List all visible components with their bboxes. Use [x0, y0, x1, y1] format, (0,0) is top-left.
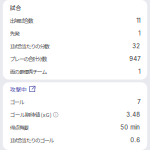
staticText: 50 min [120, 124, 140, 131]
button[interactable]: プレーの合計分数 [3, 52, 147, 65]
staticText: 先発 [10, 29, 19, 37]
button[interactable]: ゴール期待値 (xG) [3, 108, 147, 121]
staticText: 攻撃中 [10, 85, 27, 93]
staticText: 1試合当たりの分数 [10, 42, 49, 50]
staticText: 得点概要 [10, 123, 28, 131]
button[interactable]: 両の最優秀チーム [3, 65, 147, 78]
staticText: 947 [129, 55, 140, 62]
staticText: 両の最優秀チーム [10, 68, 47, 76]
button[interactable]: 攻撃中 [3, 83, 147, 96]
button[interactable]: 1試合当たりの分数 [3, 40, 147, 53]
staticText: ゴール [10, 98, 24, 106]
staticText: 出場試合数 [10, 17, 33, 25]
button[interactable]: 1試合当たりのゴール [3, 134, 147, 147]
staticText: 3.48 [126, 111, 140, 118]
staticText: 32 [132, 42, 140, 50]
button[interactable]: 得点概要 [3, 121, 147, 134]
button[interactable]: 出場試合数 [3, 14, 147, 27]
staticText: プレーの合計分数 [10, 55, 47, 63]
staticText: 0.6 [130, 136, 140, 144]
staticText: 1 [138, 68, 140, 75]
staticText: ゴール期待値 (xG) [10, 111, 52, 119]
staticText: 試合 [10, 4, 21, 12]
staticText: 1試合当たりのゴール [10, 136, 54, 144]
staticText: 11 [136, 17, 140, 24]
button[interactable]: 先発 [3, 27, 147, 40]
staticText: 1 [138, 30, 140, 37]
staticText: i [55, 112, 56, 117]
button[interactable]: ゴール [3, 95, 147, 108]
staticText: 7 [137, 98, 140, 106]
